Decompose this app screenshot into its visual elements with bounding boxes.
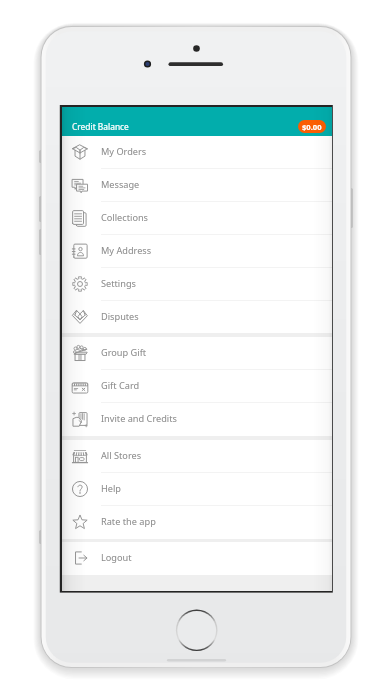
staticText: Logout [101, 551, 132, 564]
button[interactable]: My Address [62, 235, 332, 268]
staticText: Collections [101, 211, 149, 224]
button[interactable]: Credit Balance [62, 107, 332, 136]
staticText: Group Gift [101, 346, 147, 359]
staticText: $0.00 [302, 122, 322, 132]
staticText: My Address [101, 244, 152, 257]
button[interactable]: Group Gift [62, 337, 332, 370]
staticText: Gift Card [101, 379, 140, 392]
staticText: Rate the app [101, 515, 156, 528]
staticText: Message [101, 178, 140, 191]
button[interactable]: My Orders [62, 136, 332, 169]
staticText: Settings [101, 277, 136, 290]
button[interactable]: Logout [62, 542, 332, 575]
staticText: My Orders [101, 145, 147, 158]
staticText: Help [101, 482, 122, 495]
button[interactable]: Help [62, 473, 332, 506]
staticText: Invite and Credits [101, 412, 177, 425]
button[interactable]: Message [62, 169, 332, 202]
staticText: All Stores [101, 449, 142, 462]
button[interactable]: Invite and Credits [62, 403, 332, 436]
button[interactable]: Collections [62, 202, 332, 235]
button[interactable]: Disputes [62, 301, 332, 334]
button[interactable]: Settings [62, 268, 332, 301]
button[interactable]: Rate the app [62, 506, 332, 539]
button[interactable]: Gift Card [62, 370, 332, 403]
staticText: Credit Balance [72, 121, 129, 132]
staticText: Disputes [101, 310, 139, 323]
button[interactable]: All Stores [62, 440, 332, 473]
